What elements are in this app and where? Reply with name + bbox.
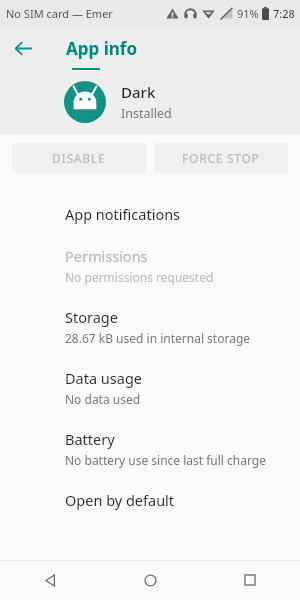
staticText: 28.67 kB used in internal storage [65,330,251,346]
staticText: No SIM card — Emer [6,6,124,21]
staticText: 7:28 [273,6,295,21]
staticText: Permissions [65,246,148,266]
staticText: DISABLE [52,150,106,166]
staticText: FORCE STOP [182,150,260,166]
button[interactable]: Open by default [0,479,300,521]
staticText: No data used [65,391,141,407]
button[interactable]: Battery [0,418,300,479]
button[interactable]: Back [0,560,100,600]
staticText: Data usage [65,368,142,388]
staticText: Dark [121,82,156,102]
staticText: No permissions requested [65,269,214,285]
button[interactable]: Navigate up [6,31,40,65]
staticText: Storage [65,307,118,327]
staticText: Open by default [65,490,175,510]
button[interactable]: Recent apps [200,560,300,600]
button[interactable]: Permissions [0,235,300,296]
button[interactable]: DISABLE [12,143,146,173]
staticText: 91% [237,6,259,21]
staticText: App notifications [65,204,181,224]
button[interactable]: Data usage [0,357,300,418]
button[interactable]: App notifications [0,193,300,235]
staticText: App info [66,37,138,60]
button[interactable]: FORCE STOP [154,143,288,173]
staticText: Battery [65,429,115,449]
staticText: Installed [121,105,172,122]
button[interactable]: Storage [0,296,300,357]
button[interactable]: Home [100,560,200,600]
staticText: No battery use since last full charge [65,452,266,468]
